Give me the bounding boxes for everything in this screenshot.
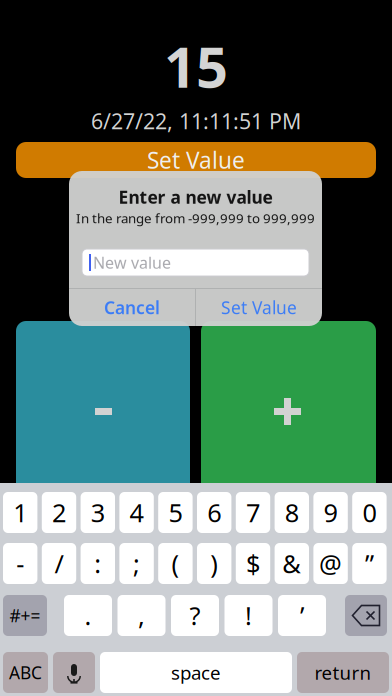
staticText: Cancel — [104, 296, 160, 319]
button[interactable]: ; — [119, 543, 154, 584]
staticText: 6 — [207, 496, 221, 529]
staticText: 5 — [168, 496, 182, 529]
staticText: $ — [246, 547, 260, 580]
button[interactable]: @ — [313, 543, 348, 584]
button[interactable]: Increment — [201, 321, 376, 496]
button[interactable]: Cancel — [69, 289, 195, 326]
button[interactable]: 6 — [197, 492, 231, 533]
staticText: ) — [210, 547, 218, 580]
staticText: 7 — [246, 496, 260, 529]
button[interactable]: . — [64, 595, 112, 636]
button[interactable]: Dictate — [53, 652, 95, 693]
button[interactable]: Decrement — [16, 321, 190, 496]
staticText: . — [84, 599, 91, 632]
button[interactable]: 1 — [3, 492, 37, 533]
button[interactable]: ? — [171, 595, 219, 636]
staticText: : — [94, 547, 101, 580]
staticText: ! — [245, 599, 252, 632]
staticText: Enter a new value — [118, 185, 272, 208]
staticText: 15 — [164, 29, 228, 103]
staticText: ” — [365, 547, 374, 580]
button[interactable]: ! — [224, 595, 272, 636]
button[interactable]: ( — [158, 543, 193, 584]
button[interactable]: 8 — [275, 492, 309, 533]
staticText: @ — [319, 547, 342, 580]
button[interactable]: Delete — [345, 595, 387, 636]
button[interactable]: 4 — [119, 492, 154, 533]
staticText: Set Value — [221, 296, 297, 319]
button[interactable]: ) — [197, 543, 231, 584]
staticText: ABC — [9, 661, 42, 684]
staticText: return — [314, 660, 371, 685]
button[interactable]: space — [100, 652, 292, 693]
button[interactable]: - — [3, 543, 37, 584]
staticText: - — [16, 547, 24, 580]
staticText: ? — [189, 599, 200, 632]
button[interactable]: #+= — [3, 595, 47, 636]
staticText: ’ — [300, 599, 304, 632]
button[interactable]: 7 — [236, 492, 270, 533]
button[interactable]: 9 — [313, 492, 348, 533]
staticText: Set Value — [147, 145, 245, 175]
button[interactable]: ’ — [278, 595, 326, 636]
staticText: 9 — [324, 496, 338, 529]
staticText: 8 — [285, 496, 299, 529]
staticText: 2 — [52, 496, 66, 529]
button[interactable]: 0 — [352, 492, 387, 533]
staticText: 4 — [130, 496, 144, 529]
staticText: & — [282, 547, 301, 580]
button[interactable]: $ — [236, 543, 270, 584]
button[interactable]: : — [81, 543, 115, 584]
staticText: 0 — [362, 496, 376, 529]
staticText: ( — [171, 547, 179, 580]
staticText: 1 — [13, 496, 27, 529]
staticText: , — [138, 599, 145, 632]
button[interactable]: 3 — [81, 492, 115, 533]
staticText: #+= — [9, 604, 40, 627]
staticText: New value — [93, 252, 171, 273]
staticText: 3 — [91, 496, 105, 529]
button[interactable]: Set Value — [196, 289, 322, 326]
button[interactable]: & — [275, 543, 309, 584]
staticText: 6/27/22, 11:11:51 PM — [91, 107, 301, 135]
button[interactable]: / — [42, 543, 76, 584]
staticText: / — [54, 547, 63, 580]
button[interactable]: 5 — [158, 492, 193, 533]
button[interactable]: 2 — [42, 492, 76, 533]
staticText: space — [171, 660, 221, 685]
staticText: ; — [133, 547, 140, 580]
button[interactable]: , — [117, 595, 165, 636]
button[interactable]: Set Value — [16, 142, 376, 178]
button[interactable]: return — [297, 652, 389, 693]
staticText: In the range from -999,999 to 999,999 — [76, 209, 315, 227]
button[interactable]: ABC — [3, 652, 48, 693]
button[interactable]: ” — [352, 543, 387, 584]
